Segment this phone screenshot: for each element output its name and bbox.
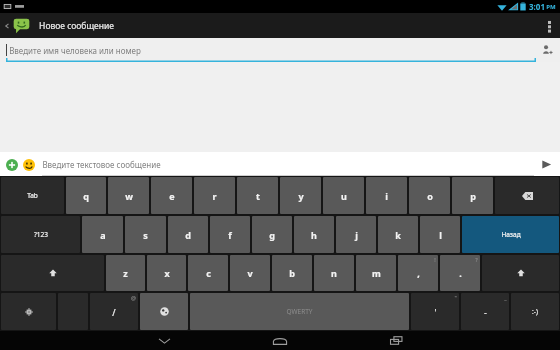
staticText: Введите имя человека или номер [9,45,141,56]
staticText: w [125,190,133,202]
staticText: n [331,267,337,279]
staticText: Новое сообщение [39,20,114,32]
button[interactable]: i [366,177,407,214]
staticText: ? [475,256,478,263]
staticText: t [256,190,260,202]
staticText: f [228,229,232,241]
button[interactable]: . [440,255,480,291]
button[interactable]: x [147,255,186,291]
staticText: o [427,190,433,202]
staticText: " [454,294,457,301]
button[interactable]: Emoji [21,157,36,172]
button[interactable]: u [323,177,364,214]
staticText: QWERTY [286,307,313,316]
button[interactable]: Messaging [12,16,31,35]
staticText: 3:01 [529,1,545,12]
button[interactable]: , [398,255,438,291]
staticText: , [417,267,420,279]
staticText: . [459,267,462,279]
button[interactable]: g [252,216,292,253]
button[interactable]: shift [482,255,559,291]
staticText: k [395,229,401,241]
button[interactable]: Home [252,331,308,350]
staticText: i [385,190,388,202]
staticText: @ [131,294,136,301]
staticText: r [212,190,217,202]
button[interactable]: Recent apps [368,331,424,350]
button[interactable]: z [106,255,145,291]
staticText: l [439,229,442,241]
button[interactable]: a [82,216,123,253]
button[interactable]: k [378,216,418,253]
button[interactable]: d [168,216,208,253]
button[interactable]: b [272,255,312,291]
staticText: e [169,190,175,202]
button[interactable]: Up [2,13,12,38]
button[interactable]: n [314,255,354,291]
button[interactable]: r [194,177,235,214]
button[interactable]: y [280,177,321,214]
button[interactable]: globe [140,293,188,330]
button[interactable]: t [237,177,278,214]
button[interactable]: Назад [462,216,559,253]
staticText: p [470,190,476,202]
staticText: g [269,229,275,241]
button[interactable]: p [452,177,493,214]
button[interactable]: j [336,216,376,253]
staticText: ?123 [34,230,48,239]
button[interactable]: ' [411,293,459,330]
button[interactable]: c [188,255,228,291]
button[interactable]: :-) [511,293,559,330]
staticText: Назад [501,230,521,239]
staticText: y [298,190,304,202]
button[interactable]: - [461,293,509,330]
staticText: v [247,267,253,279]
staticText: a [100,229,106,241]
button[interactable]: shift [1,255,104,291]
button[interactable]: bksp [495,177,559,214]
staticText: :-) [532,307,538,316]
button[interactable]: Add recipient [536,39,558,61]
button[interactable]: Tab [1,177,64,214]
button[interactable]: l [420,216,460,253]
button[interactable]: Введите имя человека или номер [6,38,536,62]
button[interactable]: w [108,177,149,214]
staticText: m [372,267,381,279]
staticText: j [355,229,358,241]
staticText: x [164,267,170,279]
staticText: q [83,190,89,202]
button[interactable]: Введите текстовое сообщение [42,152,534,176]
button[interactable]: s [125,216,166,253]
button[interactable]: h [294,216,334,253]
button[interactable]: Send [534,152,558,176]
button[interactable]: settings [1,293,56,330]
button[interactable]: e [151,177,192,214]
staticText: z [123,267,128,279]
staticText: c [206,267,211,279]
staticText: _ [504,294,507,301]
staticText: s [143,229,148,241]
staticText: u [341,190,347,202]
button[interactable]: f [210,216,250,253]
staticText: PM [546,3,556,11]
button[interactable]: Attach [4,157,19,172]
button[interactable]: More options [538,13,560,38]
staticText: ! [434,256,436,263]
staticText: d [185,229,191,241]
staticText: h [311,229,317,241]
button[interactable]: m [356,255,396,291]
staticText: - [484,306,487,318]
staticText: ' [434,306,437,318]
button[interactable]: / [90,293,138,330]
button[interactable]: o [409,177,450,214]
staticText: b [289,267,295,279]
staticText: Tab [27,191,38,200]
staticText: Введите текстовое сообщение [42,159,161,170]
button[interactable]: v [230,255,270,291]
button[interactable]: Back [136,331,192,350]
button[interactable]: ?123 [1,216,80,253]
staticText: / [112,306,116,318]
button[interactable]: q [66,177,106,214]
